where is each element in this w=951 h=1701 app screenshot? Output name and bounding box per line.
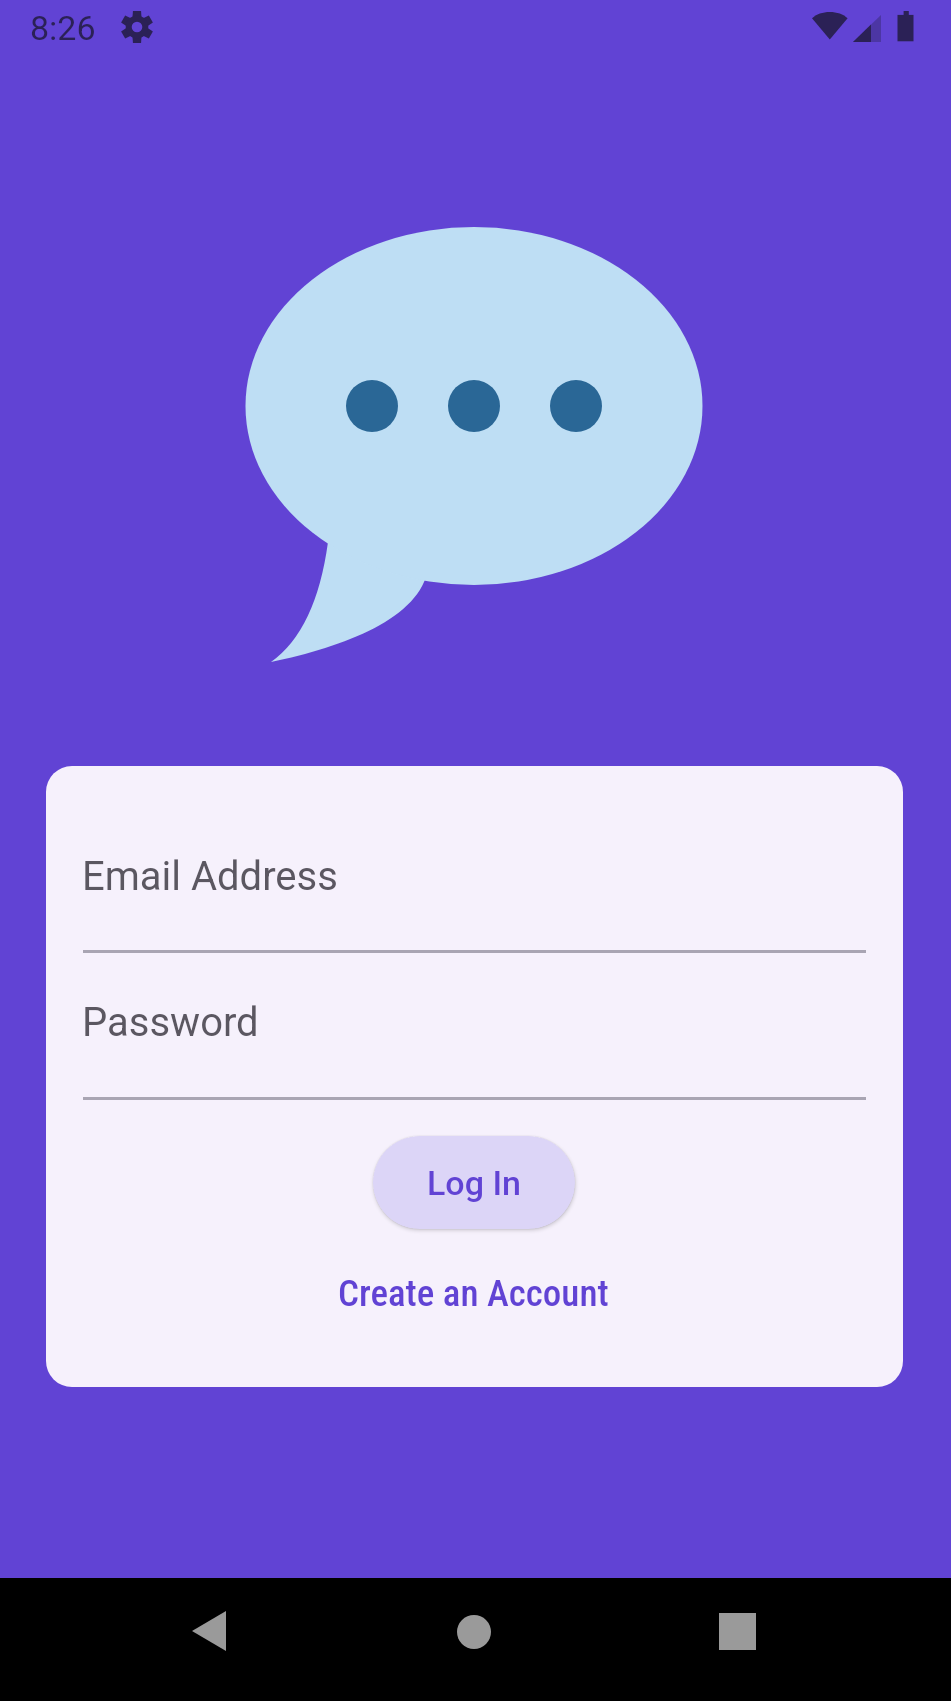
staticText: Create an Account bbox=[338, 1272, 609, 1315]
button[interactable]: Back bbox=[129, 1578, 289, 1701]
button[interactable]: Password bbox=[83, 993, 866, 1100]
button[interactable]: Log In bbox=[373, 1136, 575, 1229]
button[interactable]: Recent apps bbox=[657, 1578, 817, 1701]
button[interactable]: Email Address bbox=[83, 846, 866, 953]
staticText: Log In bbox=[427, 1163, 521, 1203]
staticText: Password bbox=[82, 999, 259, 1046]
staticText: 8:26 bbox=[30, 8, 96, 48]
staticText: Email Address bbox=[82, 853, 338, 900]
button[interactable]: Home bbox=[394, 1578, 554, 1701]
button[interactable]: Create an Account bbox=[338, 1272, 609, 1315]
